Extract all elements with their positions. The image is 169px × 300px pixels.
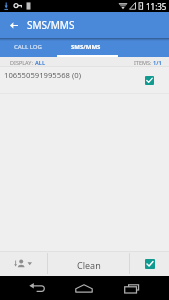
button[interactable]: Clean	[48, 251, 129, 276]
staticText: ITEMS:	[134, 59, 153, 66]
staticText: SMS/MMS	[27, 18, 75, 32]
staticText: ALL	[35, 59, 45, 66]
staticText: Clean	[77, 259, 101, 271]
button[interactable]: CALL LOG	[0, 38, 57, 57]
button[interactable]: Back	[13, 276, 61, 300]
button[interactable]: 106550591995568 (0)	[0, 67, 169, 93]
button[interactable]: Select source	[0, 251, 47, 276]
staticText: CALL LOG	[14, 43, 42, 51]
staticText: 1/1	[153, 59, 162, 66]
staticText: DISPLAY:	[10, 59, 35, 66]
button[interactable]: Home	[61, 276, 108, 300]
button[interactable]: Selected	[145, 259, 155, 269]
button[interactable]: Recent apps	[108, 276, 156, 300]
staticText: 11:35	[146, 1, 167, 12]
button[interactable]: Navigate up	[0, 12, 27, 38]
staticText: SMS/MMS	[71, 43, 101, 51]
button[interactable]: SMS/MMS	[57, 38, 118, 57]
staticText: 106550591995568 (0)	[4, 70, 81, 80]
button[interactable]: Selected	[130, 251, 169, 276]
button[interactable]: Selected	[145, 76, 154, 85]
